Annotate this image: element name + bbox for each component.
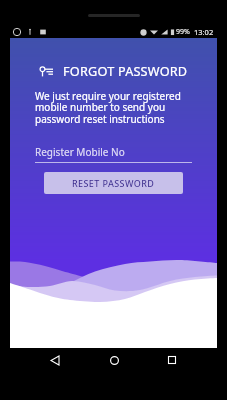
staticText: We just require your registered mobile n… (35, 89, 181, 126)
staticText: 13:02 (194, 27, 214, 37)
button[interactable]: Home (103, 349, 125, 371)
button[interactable]: RESET PASSWORD (44, 172, 183, 194)
button[interactable]: Recent apps (161, 349, 183, 371)
staticText: 99% (176, 27, 190, 37)
staticText: FORGOT PASSWORD (63, 62, 188, 79)
staticText: Register Mobile No (35, 145, 125, 159)
button[interactable]: Back (44, 349, 66, 371)
staticText: RESET PASSWORD (72, 177, 155, 189)
